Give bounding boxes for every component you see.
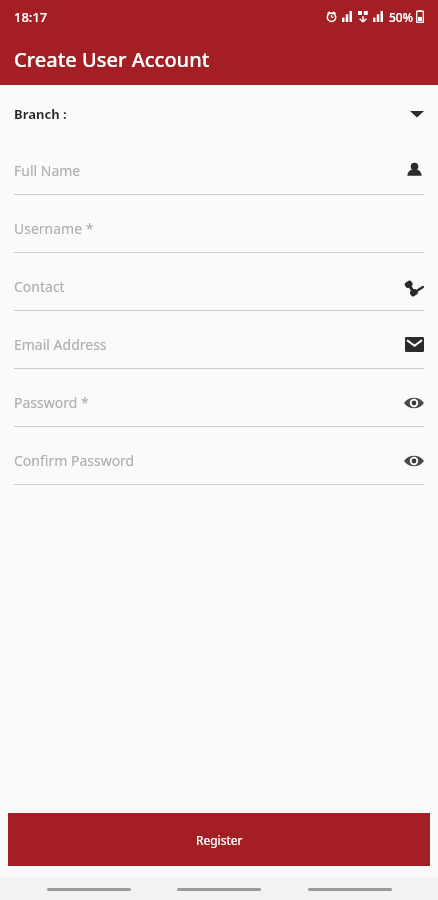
other: Email — [405, 337, 424, 352]
staticText: Create User Account — [14, 46, 210, 73]
other: Phone — [405, 277, 424, 296]
staticText: Contact — [14, 277, 65, 296]
staticText: Password * — [14, 393, 89, 412]
staticText: 50% — [389, 9, 413, 25]
other: Show password — [404, 396, 424, 410]
button[interactable]: Email Address — [0, 321, 438, 379]
staticText: Username * — [14, 219, 94, 238]
button[interactable]: Branch : — [0, 95, 438, 133]
other: System navigation — [308, 888, 392, 891]
staticText: Confirm Password — [14, 451, 135, 470]
button[interactable]: Password * — [0, 379, 438, 437]
button[interactable]: Contact — [0, 263, 438, 321]
other: System navigation — [47, 888, 131, 891]
button[interactable]: Register — [8, 813, 430, 866]
other: System navigation — [177, 888, 261, 891]
button[interactable]: Username * — [0, 205, 438, 263]
staticText: Branch : — [14, 105, 67, 123]
button[interactable]: Confirm Password — [0, 437, 438, 495]
staticText: Register — [196, 832, 243, 848]
staticText: 18:17 — [14, 8, 48, 26]
staticText: Email Address — [14, 335, 107, 354]
button[interactable]: Full Name — [0, 147, 438, 205]
staticText: Full Name — [14, 161, 81, 180]
other: Show password — [404, 454, 424, 468]
other: Select branch — [410, 109, 424, 119]
other: Person — [405, 161, 424, 180]
